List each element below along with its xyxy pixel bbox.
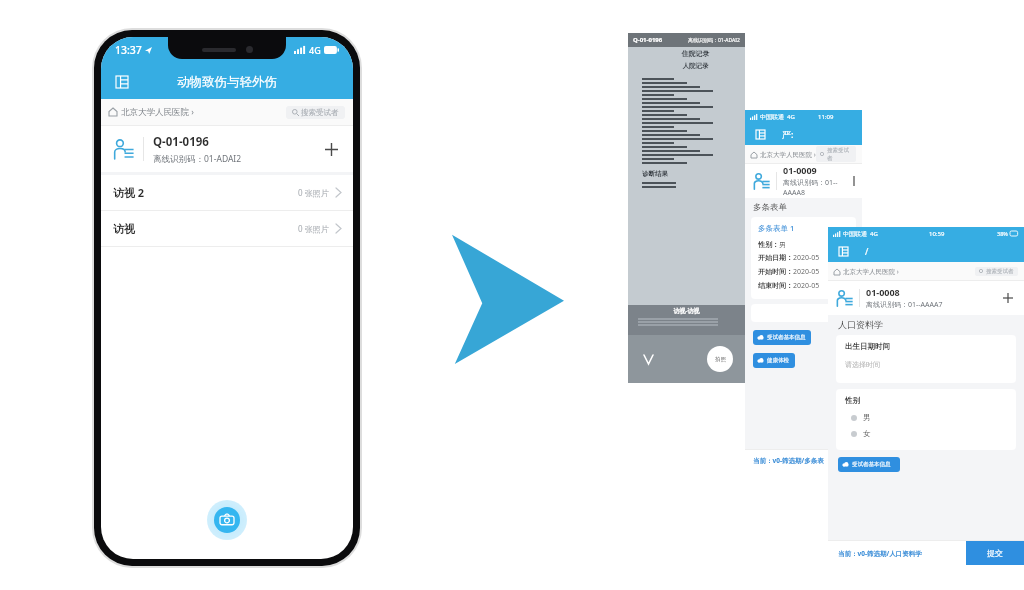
staticText: 性别	[845, 396, 860, 405]
staticText: 0 张照片	[298, 187, 329, 198]
button[interactable]: 访视	[101, 211, 353, 246]
button[interactable]: 男	[845, 413, 871, 422]
button[interactable]: +	[751, 304, 856, 322]
button[interactable]: 01-0009	[745, 164, 862, 198]
button[interactable]: Menu	[835, 243, 851, 259]
staticText: 结束时间：	[758, 281, 793, 290]
staticText: 北京大学人民医院 ›	[843, 267, 899, 276]
staticText: 动物致伤与轻外伤	[133, 74, 321, 90]
staticText: 诊断结果	[642, 170, 668, 178]
staticText: 搜索受试者	[986, 268, 1014, 275]
staticText: 13:37	[115, 43, 142, 57]
staticText: 离线识别码：01-ADAI2	[153, 153, 242, 165]
staticText: 男	[779, 240, 786, 249]
staticText: 2020-05	[793, 253, 820, 263]
staticText: 住院记录	[646, 49, 745, 58]
staticText: 4G	[870, 230, 878, 238]
staticText: 搜索受试者	[301, 108, 339, 117]
button[interactable]: 访视 2	[101, 175, 353, 210]
button[interactable]: 搜索受试者	[286, 106, 345, 119]
staticText: 人口资料学	[838, 319, 883, 330]
staticText: 2020-05	[793, 281, 820, 291]
staticText: 北京大学人民医院 ›	[121, 106, 194, 118]
staticText: +	[842, 307, 848, 319]
staticText: Q-01-0196	[153, 134, 209, 150]
staticText: 提交	[987, 548, 1003, 558]
staticText: /	[865, 245, 869, 257]
staticText: 中国联通	[760, 113, 784, 121]
staticText: 访视-访视	[628, 307, 745, 315]
staticText: 4G	[787, 113, 795, 121]
button[interactable]: 北京大学人民医院 ›	[834, 267, 899, 276]
staticText: 健康体检	[767, 357, 789, 364]
button[interactable]: Menu	[752, 126, 768, 142]
staticText: 北京大学人民医院 ›	[760, 150, 816, 159]
button[interactable]: Add	[1000, 290, 1016, 306]
staticText: 开始时间：	[758, 267, 793, 276]
staticText: 11:09	[818, 113, 834, 121]
staticText: 2020-05	[793, 267, 820, 277]
button[interactable]: 北京大学人民医院 ›	[751, 150, 816, 159]
button[interactable]: 搜索受试者	[975, 267, 1018, 276]
button[interactable]: Add	[321, 139, 341, 159]
button[interactable]: 搜索受试者	[816, 146, 856, 162]
staticText: 当前：v0-筛选期/人口资料学	[838, 549, 922, 558]
staticText: 女	[863, 429, 871, 438]
button[interactable]: Camera	[214, 507, 240, 533]
button[interactable]: 受试者基本信息	[838, 457, 900, 472]
staticText: 访视	[113, 222, 135, 236]
staticText: 请选择时间	[845, 360, 880, 369]
staticText: 10:59	[929, 230, 945, 238]
staticText: 多条表单	[753, 202, 787, 213]
staticText: 4G	[309, 44, 321, 56]
staticText: 离线识别码：01-ADAI2	[688, 37, 740, 44]
staticText: 出生日期时间	[845, 342, 890, 351]
staticText: 01-0008	[866, 286, 900, 298]
staticText: 离线识别码：01--AAAA7	[866, 300, 943, 310]
button[interactable]: 01-0008	[828, 281, 1024, 315]
staticText: 开始日期：	[758, 253, 793, 262]
button[interactable]: 拍照	[707, 346, 733, 372]
button[interactable]: Menu	[111, 71, 133, 93]
staticText: 多条表单 1	[758, 223, 795, 233]
staticText: 严:	[782, 128, 794, 140]
staticText: 搜索受试者	[827, 147, 852, 161]
staticText: 性别：	[758, 240, 779, 249]
staticText: 0 张照片	[298, 223, 329, 234]
staticText: 中国联通	[843, 230, 867, 238]
staticText: 访视 2	[113, 185, 145, 200]
staticText: 当前：v0-筛选期/多条表	[753, 456, 824, 465]
staticText: 拍照	[715, 356, 726, 363]
staticText: 男	[863, 413, 871, 422]
button[interactable]: Q-01-0196	[101, 126, 353, 172]
button[interactable]: 提交	[966, 541, 1024, 565]
staticText: 38%	[997, 230, 1008, 237]
button[interactable]: 女	[845, 429, 871, 438]
staticText: 人院记录	[646, 62, 745, 70]
staticText: 离线识别码：01--AAAA8	[783, 178, 854, 198]
staticText: 01-0009	[783, 164, 817, 176]
button[interactable]: Collapse	[640, 351, 656, 367]
staticText: 受试者基本信息	[852, 461, 891, 468]
button[interactable]: 受试者基本信息	[753, 330, 811, 345]
button[interactable]: 北京大学人民医院 ›	[109, 106, 194, 118]
button[interactable]: 健康体检	[753, 353, 795, 368]
staticText: Q-01-0196	[633, 36, 663, 44]
staticText: 受试者基本信息	[767, 334, 806, 341]
